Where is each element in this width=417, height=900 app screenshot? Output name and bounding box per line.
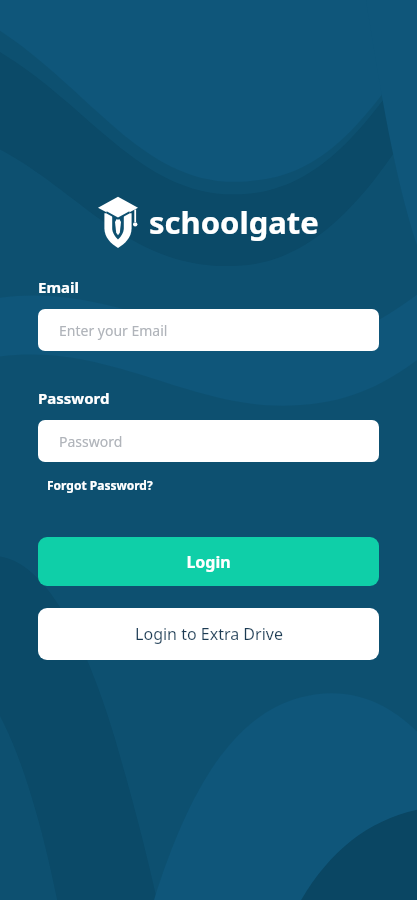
staticText: Login to Extra Drive: [135, 623, 283, 645]
staticText: Password: [38, 388, 110, 408]
button[interactable]: Enter your Email: [38, 309, 379, 351]
button[interactable]: Login: [38, 537, 379, 586]
button[interactable]: Login to Extra Drive: [38, 608, 379, 660]
staticText: Enter your Email: [59, 321, 168, 340]
staticText: Forgot Password?: [47, 477, 153, 493]
staticText: Login: [186, 551, 231, 573]
staticText: Password: [59, 432, 123, 451]
staticText: Email: [38, 277, 79, 297]
staticText: schoolgate: [149, 201, 319, 243]
button[interactable]: Password: [38, 420, 379, 462]
button[interactable]: Forgot Password?: [38, 476, 157, 494]
